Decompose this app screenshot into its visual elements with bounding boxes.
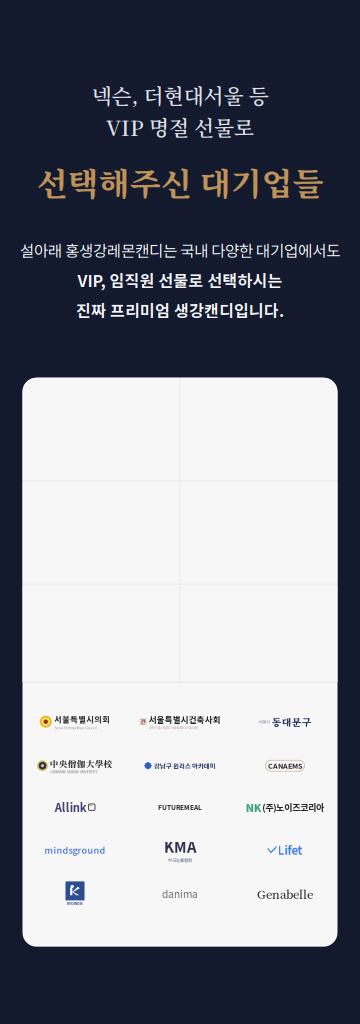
staticText: Genabelle [257, 885, 313, 902]
staticText: FUTUREMEAL [158, 802, 202, 812]
button[interactable]: FUTUREMEAL [127, 787, 232, 828]
button[interactable]: danima [127, 872, 232, 916]
staticText: (주)노이즈코리아 [262, 801, 324, 814]
staticText: 선택해주신 대기업들 [36, 159, 323, 205]
staticText: Allink [55, 799, 87, 815]
button[interactable]: mindsground [22, 828, 127, 872]
staticText: 대한건축사협회 서울특별시건축사회 [149, 725, 198, 730]
button[interactable]: 서울시 [232, 699, 337, 745]
staticText: KYOWON [67, 901, 83, 906]
button[interactable]: 서울특별시의회 [22, 699, 127, 745]
staticText: 서울시 [258, 718, 270, 725]
staticText: 설아래 홍생강레몬캔디는 국내 다양한 대기업에서도 [20, 239, 340, 261]
button[interactable]: Allink [22, 787, 127, 828]
staticText: 서울특별시의회 [54, 713, 110, 725]
staticText: CANAEMS [268, 760, 302, 771]
button[interactable]: CANAEMS [232, 745, 337, 787]
staticText: NK [246, 799, 262, 815]
button[interactable]: 건 [127, 699, 232, 745]
staticText: 진짜 프리미엄 생강캔디입니다. [76, 298, 284, 322]
staticText: Seoul Metropolitan Council [54, 725, 97, 730]
staticText: VIP 명절 선물로 [106, 112, 254, 142]
button[interactable]: NK [232, 787, 337, 828]
staticText: Lifet [277, 841, 302, 858]
staticText: 동대문구 [272, 715, 312, 729]
staticText: VIP, 임직원 선물로 선택하시는 [77, 268, 282, 292]
staticText: KMA [164, 836, 196, 857]
staticText: 넥슨, 더현대서울 등 [91, 80, 268, 110]
staticText: JOONGANG SANGHA UNIVERSITY [50, 770, 98, 774]
staticText: mindsground [44, 843, 105, 856]
staticText: 한국능률협회 [168, 857, 192, 864]
button[interactable]: Genabelle [232, 872, 337, 916]
staticText: 강남구 윈리스 아카데미 [154, 761, 216, 770]
staticText: 건 [140, 717, 145, 726]
staticText: 서울특별시건축사회 [149, 713, 221, 725]
button[interactable]: Lifet [232, 828, 337, 872]
button[interactable]: KYOWON [22, 872, 127, 916]
staticText: 中央僧伽大學校 [50, 757, 113, 770]
button[interactable]: KMA [127, 828, 232, 872]
button[interactable]: 강남구 윈리스 아카데미 [127, 745, 232, 787]
button[interactable]: 中央僧伽大學校 [22, 745, 127, 787]
staticText: danima [162, 886, 198, 901]
